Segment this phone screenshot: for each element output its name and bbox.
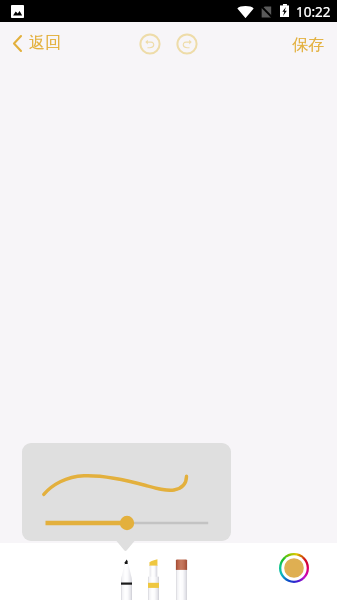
button[interactable]: Stroke width — [40, 507, 212, 531]
button[interactable]: Color picker — [275, 549, 313, 587]
staticText: 10:22 — [296, 3, 331, 21]
button[interactable]: Highlighter — [144, 556, 163, 600]
button[interactable]: 保存 — [283, 30, 333, 60]
button[interactable]: Marker — [172, 556, 191, 600]
button[interactable]: Redo — [175, 32, 199, 56]
button[interactable]: Undo — [138, 32, 162, 56]
staticText: 返回 — [29, 33, 61, 53]
staticText: 保存 — [292, 35, 324, 55]
button[interactable]: Pen — [117, 556, 136, 600]
button[interactable]: 返回 — [5, 28, 71, 58]
